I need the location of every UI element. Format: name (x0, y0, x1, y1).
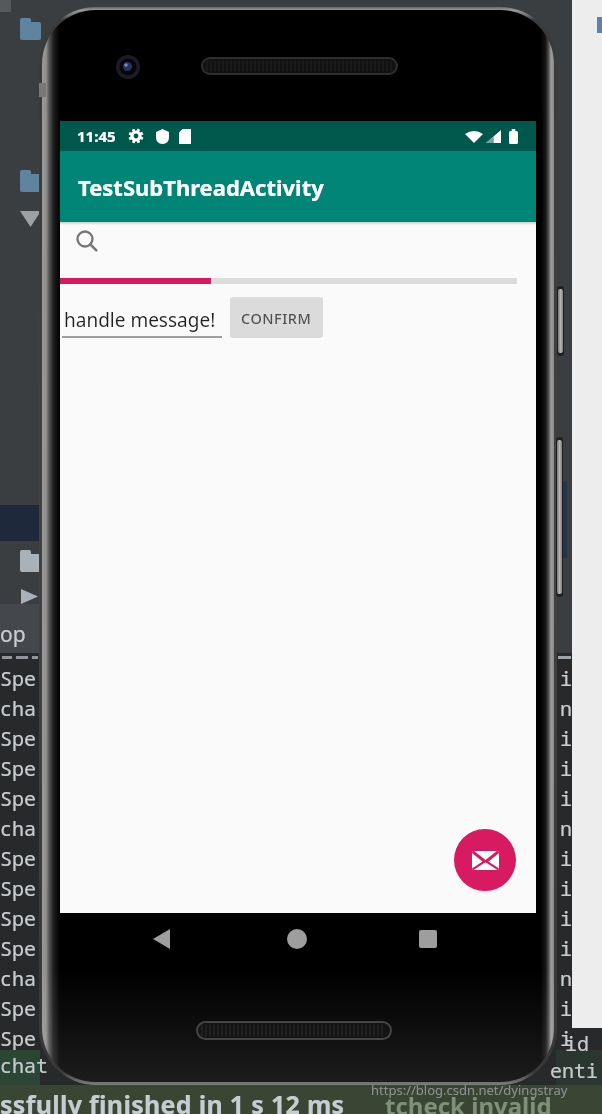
staticText: i (560, 665, 572, 692)
staticText: n (560, 965, 572, 992)
staticText: i (560, 905, 572, 932)
staticText: ssfully finished in 1 s 12 ms (0, 1087, 345, 1114)
staticText: https://blog.csdn.net/dyingstray (371, 1081, 568, 1099)
staticText: Spe (0, 875, 36, 902)
staticText: Spe (0, 785, 36, 812)
staticText: Spe (0, 995, 36, 1022)
staticText: id (565, 1030, 589, 1057)
staticText: i (560, 995, 572, 1022)
staticText: Spe (0, 725, 36, 752)
button[interactable] (413, 924, 443, 954)
staticText: i (560, 725, 572, 752)
button[interactable] (60, 225, 536, 278)
staticText: chat (0, 1052, 48, 1079)
staticText: Spe (0, 845, 36, 872)
staticText: 11:45 (77, 126, 116, 146)
staticText: i (560, 845, 572, 872)
staticText: i (560, 785, 572, 812)
button[interactable]: CONFIRM (230, 297, 323, 338)
staticText: enti (550, 1057, 598, 1084)
staticText: CONFIRM (241, 308, 312, 328)
staticText: tcheck invalid (385, 1089, 552, 1114)
staticText: cha (0, 815, 36, 842)
staticText: Spe (0, 1025, 36, 1052)
staticText: op (0, 620, 26, 649)
staticText: Spe (0, 935, 36, 962)
staticText: i (560, 875, 572, 902)
staticText: cha (0, 695, 36, 722)
staticText: n (560, 695, 572, 722)
staticText: Spe (0, 755, 36, 782)
staticText: handle message! (64, 307, 216, 333)
staticText: cha (0, 965, 36, 992)
button[interactable] (282, 924, 312, 954)
staticText: i (560, 755, 572, 782)
staticText: Spe (0, 905, 36, 932)
staticText: n (560, 815, 572, 842)
button[interactable]: handle message! (60, 297, 222, 338)
button[interactable] (146, 923, 176, 955)
staticText: i (560, 1025, 572, 1052)
staticText: Spe (0, 665, 36, 692)
button[interactable] (454, 829, 516, 891)
staticText: TestSubThreadActivity (78, 172, 324, 202)
staticText: i (560, 935, 572, 962)
